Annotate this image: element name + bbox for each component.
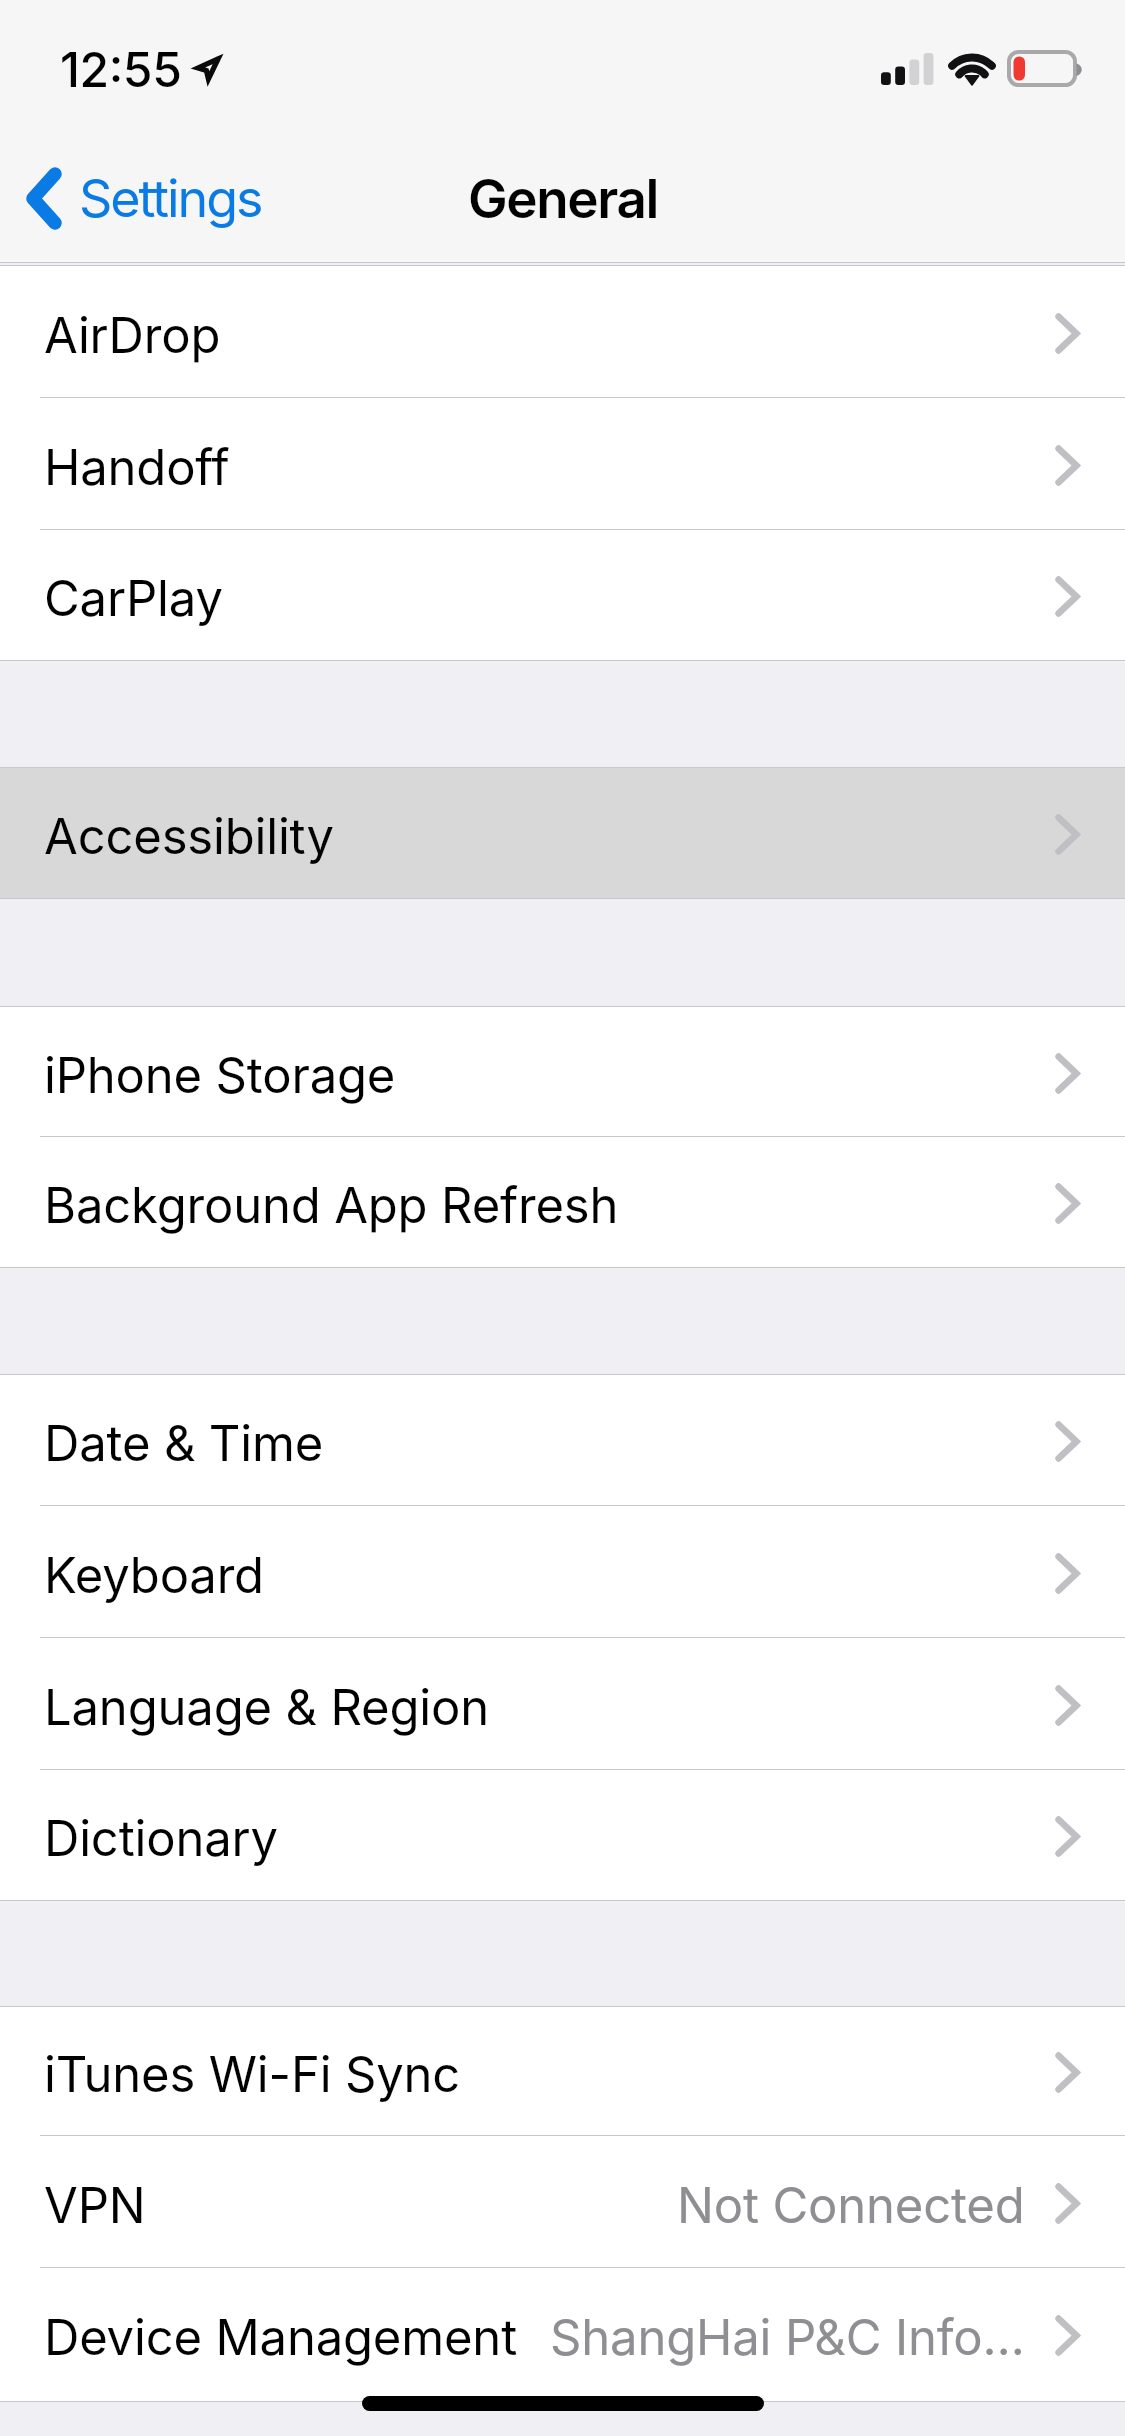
- staticText: iPhone Storage: [44, 1046, 396, 1105]
- staticText: Accessibility: [44, 807, 334, 866]
- button[interactable]: Handoff: [0, 398, 1125, 530]
- button[interactable]: Language & Region: [0, 1638, 1125, 1770]
- button[interactable]: Date & Time: [0, 1375, 1125, 1506]
- staticText: Language & Region: [44, 1678, 490, 1737]
- button[interactable]: AirDrop: [0, 266, 1125, 398]
- staticText: General: [468, 167, 658, 231]
- button[interactable]: iPhone Storage: [0, 1007, 1125, 1137]
- button[interactable]: Device Management: [0, 2268, 1125, 2401]
- staticText: VPN: [44, 2176, 146, 2235]
- button[interactable]: iTunes Wi-Fi Sync: [0, 2007, 1125, 2136]
- staticText: Handoff: [44, 438, 230, 497]
- button[interactable]: Keyboard: [0, 1506, 1125, 1638]
- staticText: Device Management: [44, 2308, 517, 2367]
- staticText: iTunes Wi-Fi Sync: [44, 2045, 461, 2104]
- button[interactable]: Background App Refresh: [0, 1137, 1125, 1267]
- button[interactable]: CarPlay: [0, 530, 1125, 660]
- button[interactable]: Back to Settings: [0, 143, 282, 253]
- staticText: AirDrop: [44, 306, 221, 365]
- button[interactable]: Dictionary: [0, 1770, 1125, 1900]
- staticText: 12:55: [60, 40, 182, 98]
- staticText: Background App Refresh: [44, 1176, 619, 1235]
- staticText: Keyboard: [44, 1546, 264, 1605]
- staticText: Date & Time: [44, 1414, 324, 1473]
- staticText: Dictionary: [44, 1809, 278, 1868]
- staticText: CarPlay: [44, 569, 223, 628]
- staticText: Not Connected: [677, 2176, 1025, 2235]
- staticText: ShangHai P&C Info…: [550, 2308, 1025, 2367]
- button[interactable]: VPN: [0, 2136, 1125, 2268]
- staticText: Settings: [79, 167, 262, 230]
- button[interactable]: Accessibility: [0, 768, 1125, 898]
